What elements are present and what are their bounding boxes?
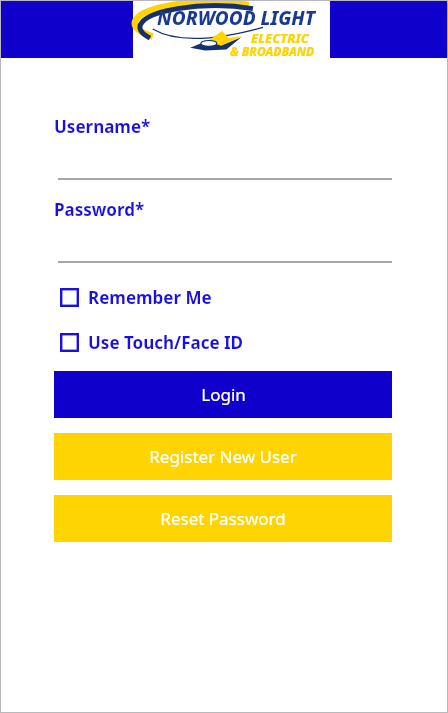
staticText: Reset Password — [160, 507, 286, 530]
button[interactable]: Reset Password — [54, 495, 392, 542]
button[interactable]: Use Touch/Face ID — [60, 331, 244, 354]
button[interactable]: Remember Me — [60, 286, 212, 309]
staticText: Register New User — [149, 445, 297, 468]
button[interactable]: Login — [54, 371, 392, 418]
staticText: ELECTRIC — [251, 29, 309, 47]
staticText: Username* — [54, 115, 151, 138]
staticText: NORWOOD LIGHT — [157, 5, 316, 31]
staticText: & BROADBAND — [230, 43, 315, 59]
staticText: Remember Me — [88, 286, 212, 309]
staticText: Password* — [54, 198, 145, 221]
button[interactable]: Register New User — [54, 433, 392, 480]
staticText: Use Touch/Face ID — [88, 331, 244, 354]
staticText: Login — [201, 383, 246, 406]
